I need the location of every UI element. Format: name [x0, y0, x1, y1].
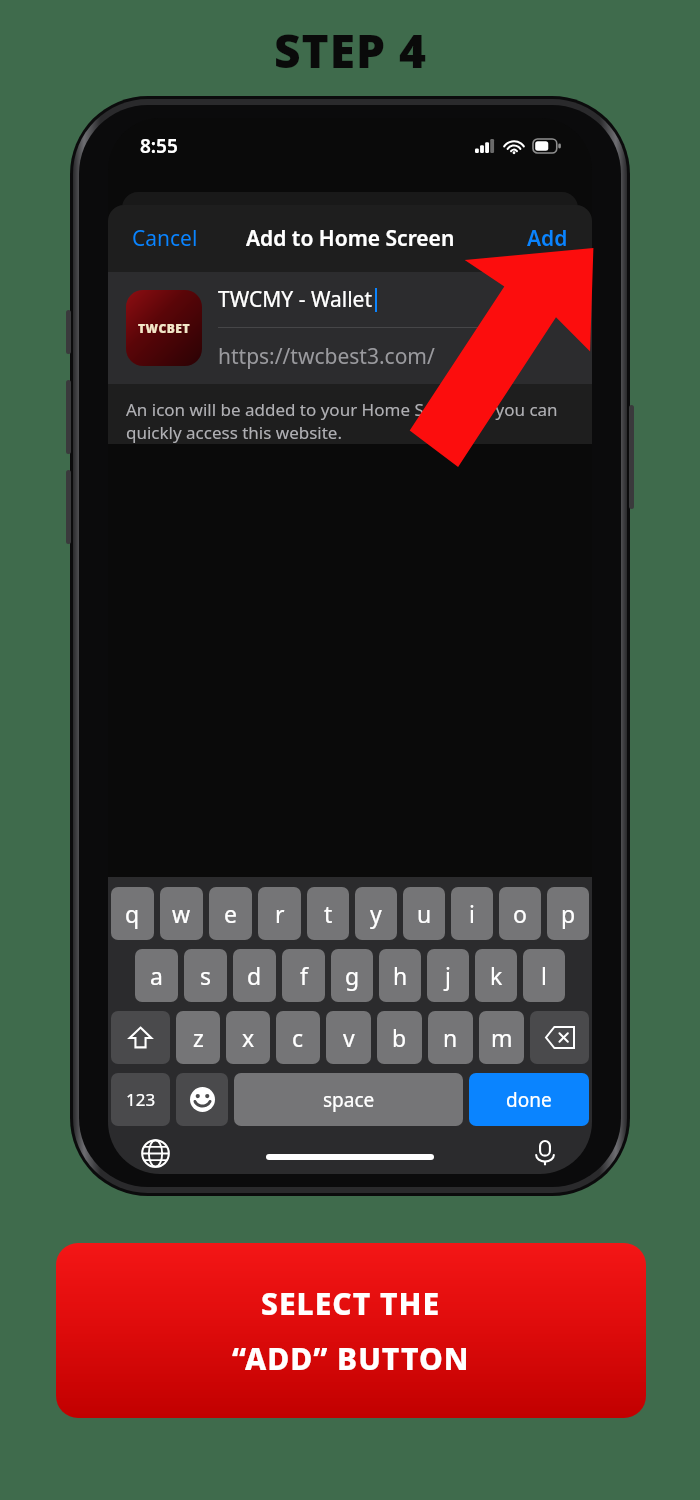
staticText: done — [506, 1087, 552, 1113]
button[interactable]: Emoji — [176, 1073, 228, 1126]
staticText: h — [393, 960, 408, 991]
staticText: b — [392, 1022, 407, 1053]
staticText: j — [445, 960, 451, 991]
button[interactable]: n — [428, 1011, 473, 1064]
button[interactable]: b — [377, 1011, 422, 1064]
staticText: q — [125, 898, 140, 929]
button[interactable]: l — [523, 949, 565, 1002]
staticText: t — [324, 898, 333, 929]
staticText: d — [247, 960, 262, 991]
button[interactable]: p — [547, 887, 589, 940]
button[interactable]: o — [499, 887, 541, 940]
button[interactable]: Add — [519, 218, 576, 259]
button[interactable]: e — [209, 887, 252, 940]
staticText: 8:55 — [140, 133, 178, 159]
staticText: e — [224, 898, 237, 929]
button[interactable]: f — [282, 949, 325, 1002]
button[interactable]: 123 — [111, 1073, 170, 1126]
button[interactable]: j — [427, 949, 469, 1002]
staticText: TWCBET — [138, 320, 190, 336]
button[interactable]: x — [226, 1011, 270, 1064]
button[interactable]: Backspace — [530, 1011, 589, 1064]
button[interactable]: SELECT THE — [56, 1243, 646, 1418]
button[interactable]: q — [111, 887, 154, 940]
button[interactable]: k — [475, 949, 517, 1002]
staticText: Add to Home Screen — [246, 224, 455, 253]
button[interactable]: Cancel — [124, 218, 206, 259]
staticText: a — [150, 960, 163, 991]
button[interactable]: i — [451, 887, 493, 940]
button[interactable]: g — [331, 949, 373, 1002]
staticText: g — [345, 960, 360, 991]
button[interactable]: a — [135, 949, 178, 1002]
staticText: space — [323, 1087, 375, 1113]
button[interactable]: v — [326, 1011, 371, 1064]
staticText: i — [469, 898, 475, 929]
staticText: w — [172, 898, 191, 929]
staticText: x — [242, 1022, 255, 1053]
staticText: u — [417, 898, 432, 929]
staticText: An icon will be added to your Home Scree… — [126, 398, 558, 444]
staticText: Cancel — [132, 224, 198, 253]
button[interactable]: done — [469, 1073, 589, 1126]
staticText: 123 — [126, 1088, 156, 1111]
staticText: f — [300, 960, 308, 991]
button[interactable]: Change keyboard language — [134, 1132, 176, 1174]
button[interactable]: m — [479, 1011, 524, 1064]
button[interactable]: y — [355, 887, 397, 940]
button[interactable]: r — [258, 887, 301, 940]
staticText: o — [513, 898, 527, 929]
button[interactable]: Dictation — [524, 1132, 566, 1174]
staticText: r — [275, 898, 285, 929]
button[interactable]: space — [234, 1073, 463, 1126]
button[interactable]: t — [307, 887, 349, 940]
staticText: c — [292, 1022, 304, 1053]
button[interactable]: d — [233, 949, 276, 1002]
staticText: Add — [527, 224, 568, 253]
button[interactable]: h — [379, 949, 421, 1002]
staticText: p — [561, 898, 576, 929]
staticText: l — [541, 960, 547, 991]
staticText: STEP 4 — [274, 19, 427, 82]
staticText: y — [370, 898, 382, 929]
staticText: v — [343, 1022, 355, 1053]
staticText: https://twcbest3.com/ — [218, 342, 435, 371]
staticText: m — [491, 1022, 513, 1053]
button[interactable]: u — [403, 887, 445, 940]
button[interactable]: w — [160, 887, 203, 940]
staticText: s — [200, 960, 212, 991]
staticText: “ADD” BUTTON — [232, 1338, 470, 1379]
button[interactable]: s — [184, 949, 227, 1002]
button[interactable]: z — [176, 1011, 220, 1064]
button[interactable]: Shift — [111, 1011, 170, 1064]
staticText: k — [490, 960, 503, 991]
staticText: TWCMY - Wallet — [218, 285, 373, 314]
staticText: n — [443, 1022, 458, 1053]
staticText: SELECT THE — [261, 1283, 441, 1324]
staticText: z — [193, 1022, 204, 1053]
button[interactable]: c — [276, 1011, 320, 1064]
